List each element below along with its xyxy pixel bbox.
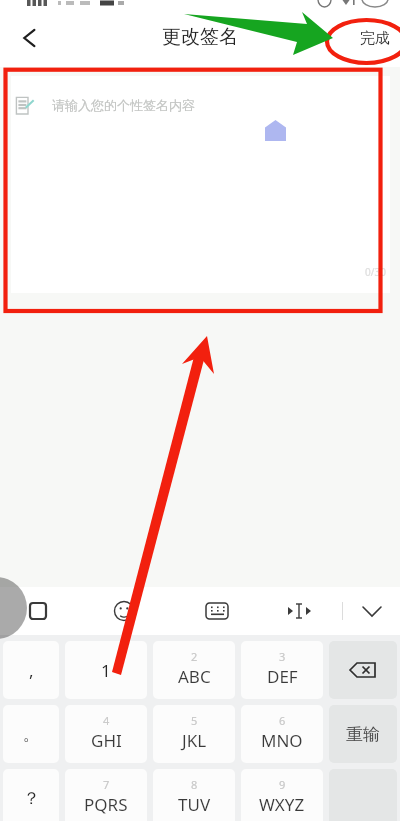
staticText: 1 [101,659,111,682]
button[interactable]: 2 [153,641,235,699]
staticText: MNO [261,729,303,752]
staticText: PQRS [84,793,128,816]
button[interactable]: Back [11,20,47,56]
button[interactable]: 重输 [329,705,397,763]
button[interactable]: 8 [153,769,235,821]
button[interactable]: 4 [65,705,147,763]
staticText: 9 [279,777,286,792]
button[interactable]: 9 [241,769,323,821]
button[interactable]: 3 [241,641,323,699]
button[interactable]: 1 [65,641,147,699]
staticText: 重输 [346,724,380,745]
staticText: TUV [178,793,211,816]
staticText: 更改签名 [162,25,238,49]
button[interactable]: Emoji [76,587,172,635]
button[interactable]: Delete [329,641,397,699]
button[interactable]: 。 [3,705,59,763]
staticText: GHI [91,729,122,752]
staticText: 6 [279,713,286,728]
button[interactable]: Keyboard [172,587,262,635]
staticText: 。 [23,724,40,745]
staticText: WXYZ [259,793,305,816]
staticText: 完成 [360,29,390,48]
button[interactable]: Sogou [0,587,76,635]
staticText: , [29,659,34,682]
staticText: DEF [267,665,298,688]
button[interactable]: 7 [65,769,147,821]
button[interactable]: 完成 [356,23,394,54]
staticText: JKL [182,729,207,752]
staticText: 8 [191,777,198,792]
staticText: 请输入您的个性签名内容 [52,97,195,113]
button[interactable]: ？ [3,769,59,821]
staticText: ？ [23,788,40,809]
button[interactable]: , [3,641,59,699]
button[interactable]: 5 [153,705,235,763]
button[interactable]: 6 [241,705,323,763]
staticText: 5 [191,713,198,728]
staticText: 7 [103,777,110,792]
button[interactable]: 请输入您的个性签名内容 [11,76,390,293]
staticText: 3 [279,649,286,664]
staticText: 4 [103,713,110,728]
staticText: 0/30 [365,265,386,279]
button[interactable]: Move cursor [262,587,342,635]
button[interactable]: Hide keyboard [343,587,400,635]
staticText: ABC [178,665,211,688]
staticText: 2 [191,649,198,664]
